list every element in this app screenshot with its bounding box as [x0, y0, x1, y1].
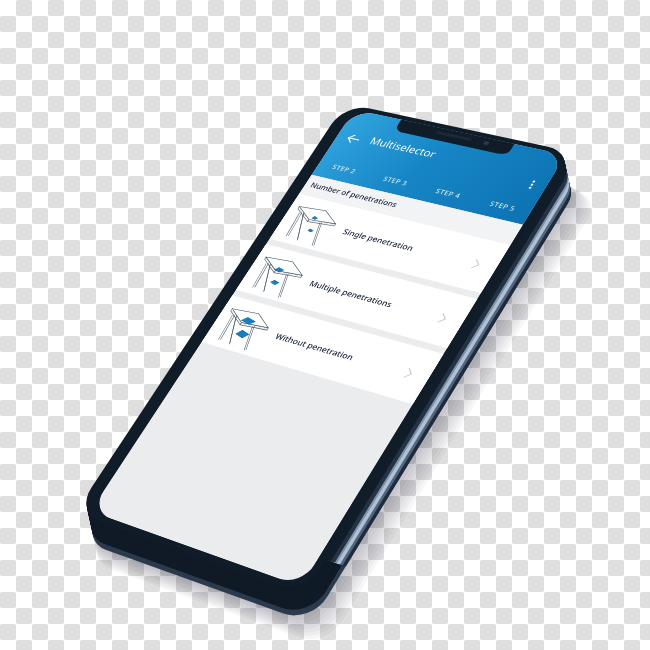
button[interactable]: Multiselector phone mockup	[0, 0, 650, 650]
